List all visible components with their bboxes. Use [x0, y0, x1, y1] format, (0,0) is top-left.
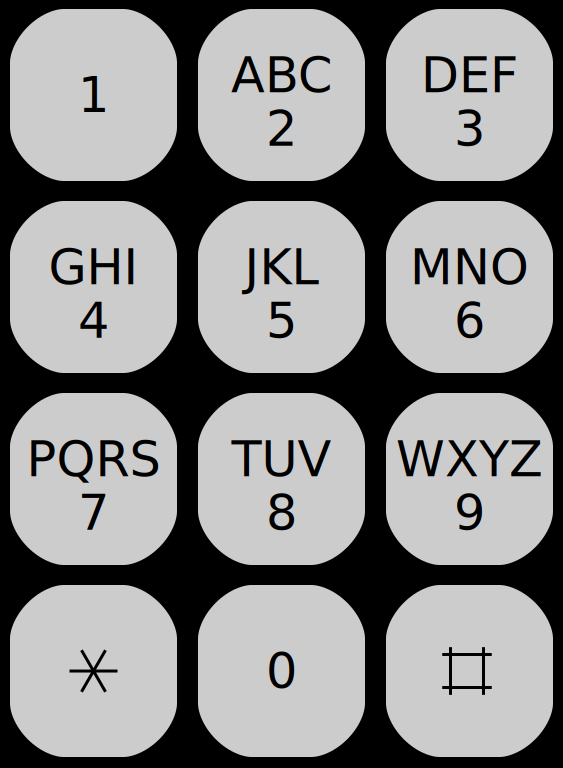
button[interactable]: WXYZ [386, 393, 553, 565]
button[interactable]: TUV [198, 393, 365, 565]
button[interactable]: DEF [386, 9, 553, 181]
staticText: ABC [231, 47, 332, 104]
button[interactable]: Star [10, 585, 177, 757]
staticText: 1 [78, 66, 109, 124]
staticText: GHI [48, 239, 138, 296]
staticText: WXYZ [396, 431, 543, 488]
button[interactable]: PQRS [10, 393, 177, 565]
staticText: 3 [454, 100, 485, 157]
staticText: 5 [266, 292, 297, 349]
staticText: TUV [231, 431, 331, 488]
staticText: 4 [78, 292, 109, 349]
staticText: DEF [421, 47, 518, 104]
button[interactable]: 1 [10, 9, 177, 181]
staticText: 2 [266, 100, 297, 157]
button[interactable]: JKL [198, 201, 365, 373]
staticText: 0 [266, 642, 297, 700]
staticText: 8 [266, 484, 297, 541]
staticText: JKL [244, 239, 318, 296]
staticText: 9 [454, 484, 485, 541]
staticText: 7 [78, 484, 109, 541]
button[interactable]: MNO [386, 201, 553, 373]
staticText: MNO [410, 239, 529, 296]
button[interactable]: GHI [10, 201, 177, 373]
staticText: 6 [454, 292, 485, 349]
button[interactable]: ABC [198, 9, 365, 181]
button[interactable]: 0 [198, 585, 365, 757]
staticText: PQRS [26, 431, 160, 488]
button[interactable]: Pound [386, 585, 553, 757]
